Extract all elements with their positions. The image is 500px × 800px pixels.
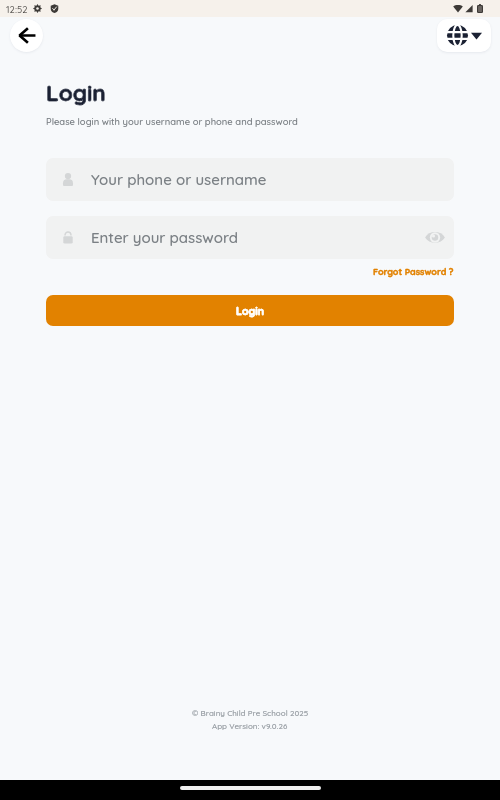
button[interactable]: Forgot Password ? <box>373 264 500 279</box>
button[interactable]: Login <box>46 295 454 326</box>
staticText: Login <box>236 304 264 317</box>
staticText: Forgot Password ? <box>373 266 454 277</box>
button[interactable]: Back <box>10 19 43 52</box>
staticText: Forgot Password ? <box>373 266 454 277</box>
staticText: Enter your password <box>91 228 239 247</box>
button[interactable]: Change language <box>437 19 491 52</box>
staticText: Your phone or username <box>91 170 267 189</box>
staticText: Login <box>46 78 106 106</box>
staticText: 12:52 <box>6 3 28 15</box>
staticText: Please login with your username or phone… <box>46 116 298 128</box>
button[interactable]: Show password <box>416 216 454 259</box>
button[interactable]: Your phone or username <box>46 158 454 201</box>
staticText: Login <box>46 78 106 106</box>
staticText: Login <box>236 304 264 317</box>
staticText: © Brainy Child Pre School 2025 <box>192 708 309 718</box>
staticText: App Version: v9.0.26 <box>212 721 288 731</box>
button[interactable]: Enter your password <box>46 216 454 259</box>
